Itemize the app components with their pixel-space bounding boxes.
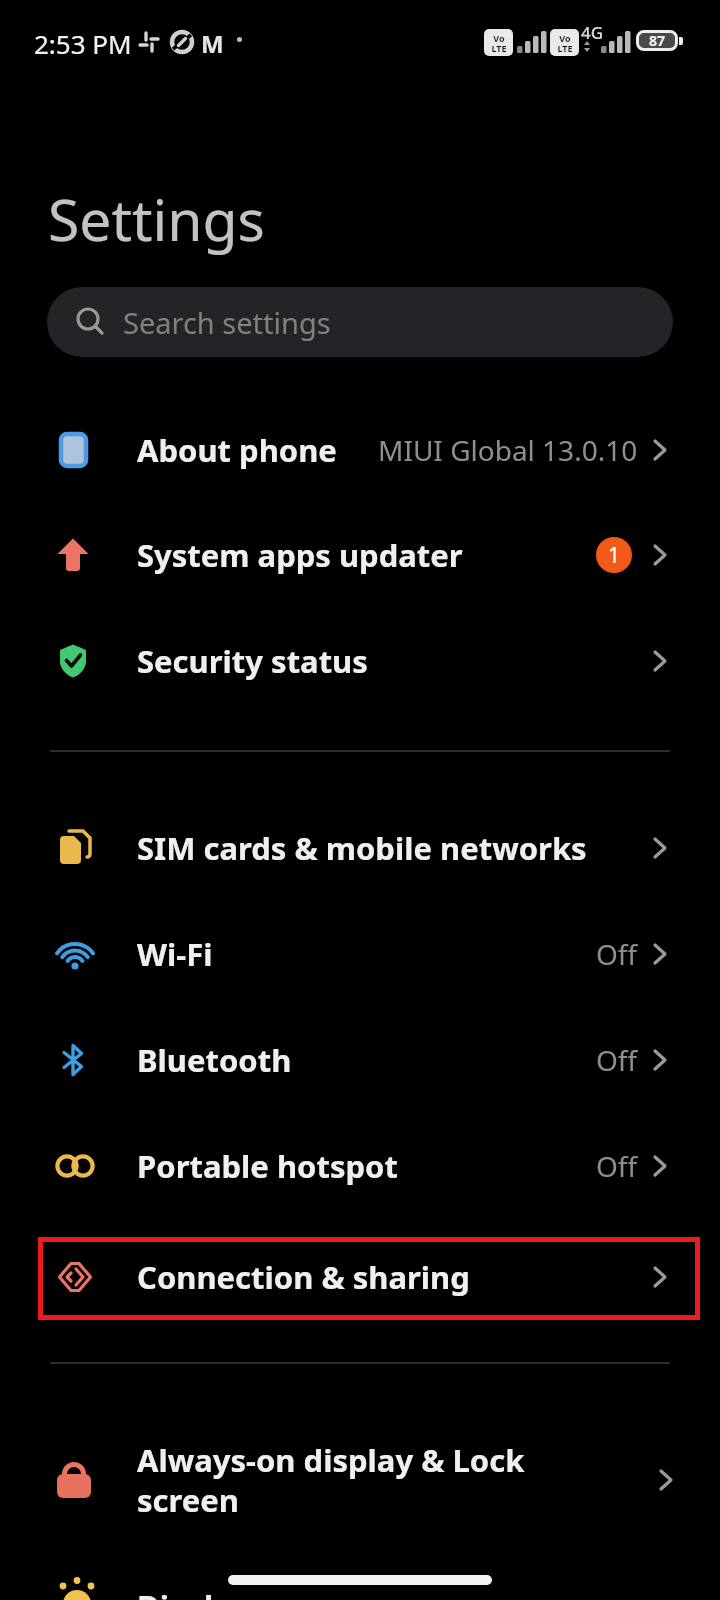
staticText: Always-on display & Lock screen <box>137 1439 525 1521</box>
staticText: Connection & sharing <box>137 1256 470 1298</box>
staticText: Vo LTE <box>557 32 573 54</box>
staticText: Bluetooth <box>137 1039 292 1081</box>
staticText: 4G <box>581 21 604 44</box>
button[interactable]: Connection & sharing <box>0 1224 720 1330</box>
staticText: Off <box>596 1147 638 1185</box>
button[interactable]: Security status <box>0 608 720 714</box>
button[interactable]: Always-on display & Lock screen <box>0 1425 720 1535</box>
staticText: About phone <box>137 429 337 471</box>
staticText: Off <box>596 1041 638 1079</box>
staticText: 1 <box>608 541 621 570</box>
staticText: Portable hotspot <box>137 1145 398 1187</box>
staticText: SIM cards & mobile networks <box>137 827 587 869</box>
staticText: 87 <box>649 31 666 50</box>
staticText: System apps updater <box>137 534 463 576</box>
staticText: Display <box>137 1585 250 1600</box>
button[interactable]: SIM cards & mobile networks <box>0 795 720 901</box>
staticText: Wi-Fi <box>137 933 213 975</box>
staticText: Security status <box>137 640 368 682</box>
staticText: 2:53 PM <box>34 26 132 61</box>
staticText: Vo LTE <box>491 32 507 54</box>
staticText: Off <box>596 935 638 973</box>
button[interactable]: About phone <box>0 397 720 503</box>
button[interactable]: Bluetooth <box>0 1007 720 1113</box>
button[interactable]: Portable hotspot <box>0 1113 720 1219</box>
button[interactable]: System apps updater <box>0 502 720 608</box>
staticText: M <box>201 27 224 60</box>
staticText: Settings <box>48 180 265 258</box>
staticText: MIUI Global 13.0.10 <box>378 431 638 469</box>
staticText: Search settings <box>123 303 331 342</box>
button[interactable]: Search settings <box>47 287 673 357</box>
button[interactable]: Display <box>0 1553 720 1600</box>
button[interactable]: Wi-Fi <box>0 901 720 1007</box>
